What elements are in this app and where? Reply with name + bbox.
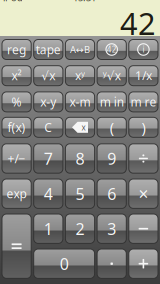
- staticText: 42: [107, 44, 117, 55]
- staticText: 1: [44, 218, 53, 239]
- staticText: 15:31: [73, 0, 96, 4]
- button[interactable]: Constants: [97, 39, 126, 59]
- staticText: x-m: [69, 94, 90, 110]
- button[interactable]: A↔B: [65, 39, 95, 59]
- staticText: i: [142, 44, 144, 55]
- button[interactable]: x-y: [34, 92, 63, 112]
- button[interactable]: m re: [129, 92, 158, 112]
- staticText: iPod: [3, 0, 23, 4]
- staticText: A↔B: [70, 43, 90, 56]
- button[interactable]: 2: [65, 214, 95, 243]
- button[interactable]: (: [97, 117, 126, 137]
- button[interactable]: x²: [2, 66, 31, 86]
- staticText: 5: [75, 183, 84, 204]
- staticText: √x: [41, 68, 55, 84]
- button[interactable]: Info: [129, 39, 158, 59]
- staticText: 7: [44, 148, 53, 169]
- staticText: 2: [75, 218, 84, 239]
- staticText: x-y: [40, 94, 56, 110]
- button[interactable]: reg: [2, 39, 31, 59]
- staticText: ʸ√x: [103, 68, 121, 84]
- button[interactable]: Plus: [129, 249, 158, 278]
- button[interactable]: ʸ√x: [97, 66, 126, 86]
- button[interactable]: ): [129, 117, 158, 137]
- staticText: ): [141, 118, 145, 137]
- staticText: 3: [107, 218, 116, 239]
- button[interactable]: Decimal point: [97, 249, 126, 278]
- button[interactable]: tape: [34, 39, 63, 59]
- button[interactable]: Multiply: [129, 179, 158, 208]
- staticText: +/−: [8, 150, 26, 166]
- staticText: x: [81, 122, 85, 133]
- button[interactable]: 9: [97, 144, 126, 173]
- staticText: C: [44, 119, 52, 135]
- button[interactable]: C: [34, 117, 63, 137]
- button[interactable]: Equals: [2, 214, 31, 278]
- staticText: 42: [120, 3, 156, 43]
- button[interactable]: x-m: [65, 92, 95, 112]
- staticText: 9: [107, 148, 116, 169]
- staticText: tape: [36, 41, 61, 57]
- staticText: 0: [60, 253, 69, 274]
- button[interactable]: Delete: [65, 117, 95, 137]
- button[interactable]: 7: [34, 144, 63, 173]
- staticText: 6: [107, 183, 116, 204]
- button[interactable]: 3: [97, 214, 126, 243]
- staticText: ×: [138, 182, 148, 205]
- button[interactable]: Minus: [129, 214, 158, 243]
- staticText: f(x): [8, 119, 26, 135]
- staticText: %: [12, 94, 22, 110]
- staticText: m in: [100, 94, 124, 110]
- button[interactable]: Divide: [129, 144, 158, 173]
- button[interactable]: m in: [97, 92, 126, 112]
- staticText: reg: [7, 41, 26, 57]
- button[interactable]: 1/x: [129, 66, 158, 86]
- staticText: x²: [12, 68, 22, 84]
- button[interactable]: 6: [97, 179, 126, 208]
- button[interactable]: %: [2, 92, 31, 112]
- button[interactable]: f(x): [2, 117, 31, 137]
- staticText: exp: [7, 186, 27, 202]
- button[interactable]: 8: [65, 144, 95, 173]
- button[interactable]: 1: [34, 214, 63, 243]
- staticText: 1/x: [135, 68, 152, 84]
- button[interactable]: 4: [34, 179, 63, 208]
- staticText: (: [110, 118, 114, 137]
- button[interactable]: xʸ: [65, 66, 95, 86]
- staticText: m re: [130, 94, 156, 110]
- button[interactable]: 5: [65, 179, 95, 208]
- button[interactable]: exp: [2, 179, 31, 208]
- button[interactable]: 0: [34, 249, 95, 278]
- staticText: xʸ: [75, 68, 85, 84]
- staticText: 8: [75, 148, 84, 169]
- button[interactable]: +/−: [2, 144, 31, 173]
- button[interactable]: √x: [34, 66, 63, 86]
- staticText: 4: [44, 183, 53, 204]
